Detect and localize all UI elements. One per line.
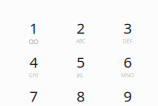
button[interactable]: 2 ABC bbox=[57, 14, 104, 48]
button[interactable]: 4 GHI bbox=[10, 48, 57, 82]
staticText: DEF bbox=[122, 38, 132, 45]
staticText: 4 bbox=[29, 52, 37, 72]
staticText: 9 bbox=[123, 86, 131, 106]
staticText: GHI bbox=[28, 72, 38, 79]
staticText: 2 bbox=[76, 18, 84, 38]
staticText: 8 bbox=[76, 86, 84, 106]
staticText: 3 bbox=[123, 18, 131, 38]
button[interactable]: 6 MNO bbox=[104, 48, 151, 82]
staticText: ABC bbox=[76, 38, 85, 45]
button[interactable]: 7 PQRS bbox=[10, 82, 57, 106]
button[interactable]: 5 JKL bbox=[57, 48, 104, 82]
staticText: 1 bbox=[29, 18, 37, 38]
button[interactable]: 8 TUV bbox=[57, 82, 104, 106]
staticText: 5 bbox=[76, 52, 84, 72]
button[interactable]: 3 DEF bbox=[104, 14, 151, 48]
button[interactable]: 1 voicemail bbox=[10, 14, 57, 48]
button[interactable]: 9 WXYZ bbox=[104, 82, 151, 106]
staticText: JKL bbox=[77, 72, 84, 79]
staticText: 7 bbox=[29, 86, 37, 106]
staticText: 6 bbox=[123, 52, 131, 72]
staticText: MNO bbox=[121, 72, 134, 79]
